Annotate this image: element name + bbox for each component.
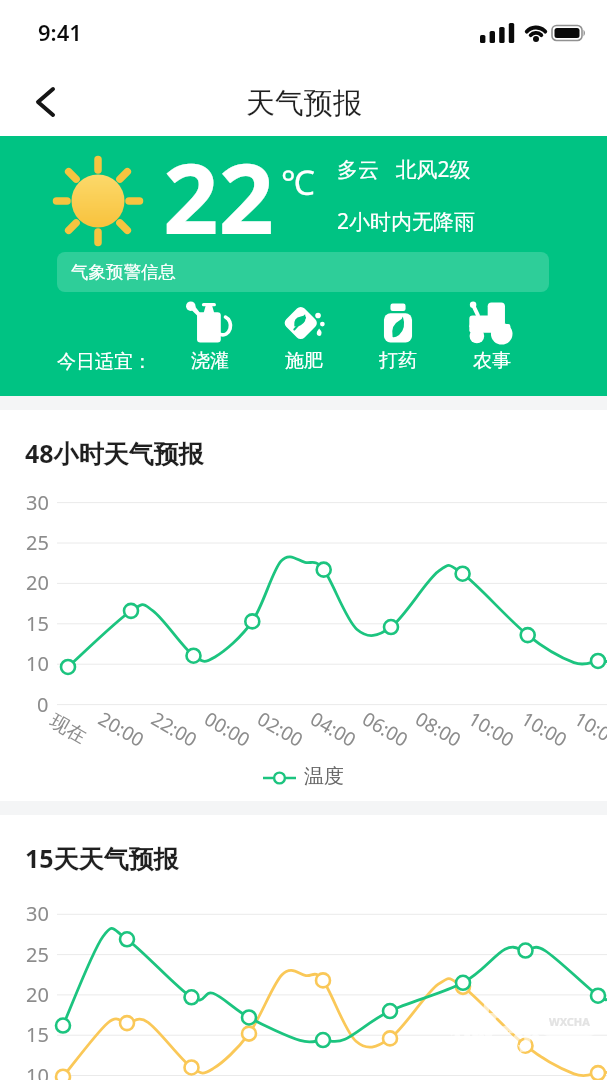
staticText: 15天天气预报: [25, 841, 179, 875]
staticText: 0: [37, 691, 49, 718]
staticText: 农事: [473, 349, 511, 373]
staticText: 10: [26, 1062, 49, 1080]
staticText: 20:00: [94, 706, 149, 753]
button[interactable]: 气象预警信息: [57, 252, 549, 292]
staticText: 10:00: [570, 706, 607, 753]
staticText: 15: [26, 1021, 49, 1048]
staticText: WXCHA: [549, 1014, 590, 1029]
button[interactable]: 施肥: [264, 300, 344, 373]
button[interactable]: 打药: [358, 300, 438, 373]
staticText: 25: [26, 529, 49, 556]
staticText: 20: [26, 569, 49, 596]
staticText: 10:00: [517, 706, 572, 753]
staticText: 多云 北风2级: [337, 155, 471, 184]
button[interactable]: [22, 80, 70, 124]
staticText: 30: [26, 489, 49, 516]
button[interactable]: 农事: [452, 300, 532, 373]
staticText: 微茶: [448, 995, 552, 1061]
staticText: 22: [163, 130, 274, 262]
staticText: 15: [26, 610, 49, 637]
staticText: 温度: [304, 764, 344, 789]
staticText: 10: [26, 650, 49, 677]
staticText: 2小时内无降雨: [337, 207, 476, 236]
staticText: 施肥: [285, 349, 323, 373]
staticText: 08:00: [411, 706, 466, 753]
staticText: 06:00: [358, 706, 413, 753]
staticText: 30: [26, 900, 49, 927]
staticText: 今日适宜：: [57, 350, 152, 374]
staticText: 48小时天气预报: [25, 436, 204, 470]
staticText: 22:00: [147, 706, 202, 753]
staticText: ℃: [281, 159, 315, 205]
button[interactable]: 浇灌: [170, 300, 250, 373]
staticText: 02:00: [253, 706, 308, 753]
staticText: 25: [26, 941, 49, 968]
staticText: 打药: [379, 349, 417, 373]
staticText: 浇灌: [191, 349, 229, 373]
staticText: 10:00: [464, 706, 519, 753]
staticText: 04:00: [306, 706, 361, 753]
staticText: .com: [540, 1030, 595, 1063]
staticText: 气象预警信息: [71, 261, 176, 283]
staticText: 00:00: [200, 706, 255, 753]
staticText: 现在: [45, 709, 90, 749]
staticText: 20: [26, 981, 49, 1008]
staticText: 9:41: [38, 17, 82, 47]
staticText: 天气预报: [246, 85, 362, 122]
